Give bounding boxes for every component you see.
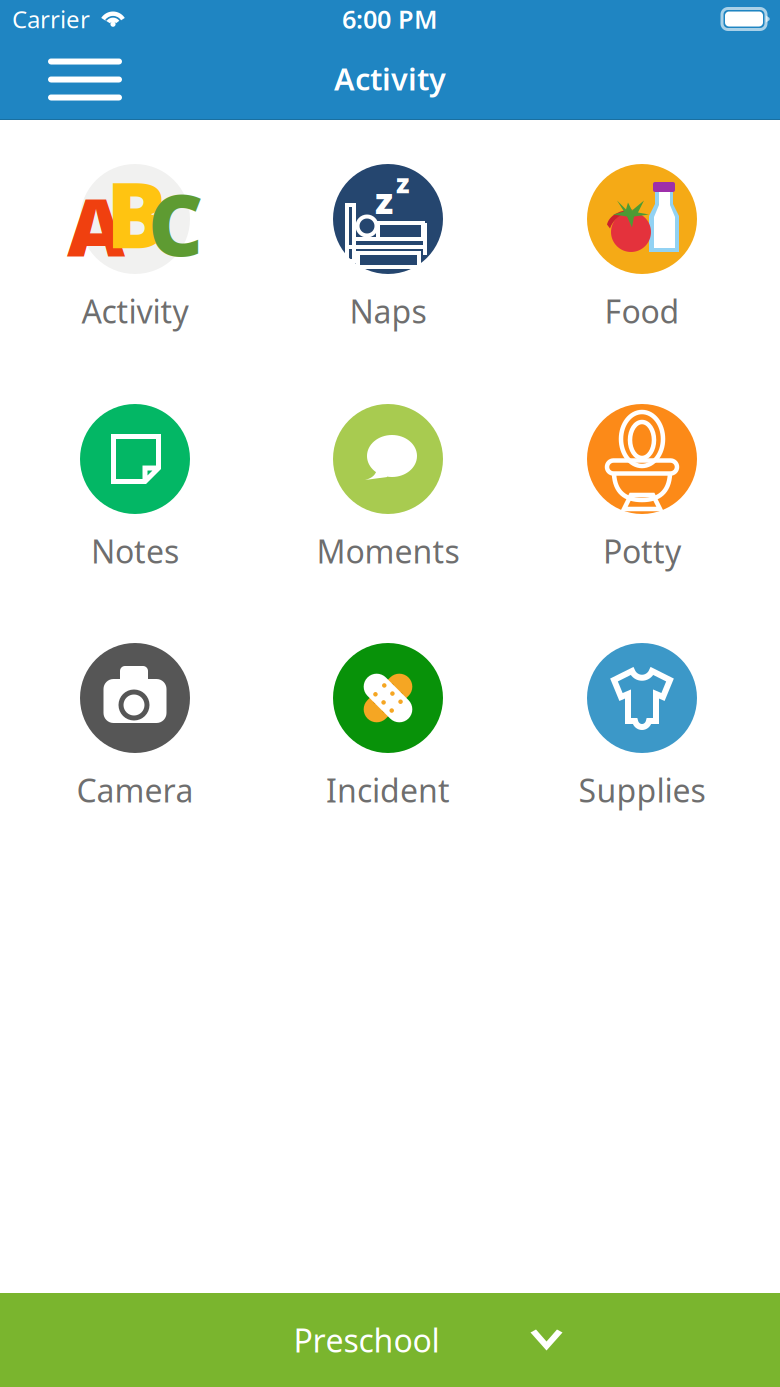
staticText: Potty <box>603 530 681 572</box>
staticText: A <box>67 173 125 279</box>
button[interactable]: Menu <box>33 42 137 117</box>
button[interactable]: Incident <box>268 643 508 810</box>
button[interactable]: Preschool <box>0 1293 780 1387</box>
button[interactable]: A <box>15 164 255 331</box>
staticText: Food <box>604 290 679 332</box>
staticText: Notes <box>91 530 179 572</box>
button[interactable]: Camera <box>15 643 255 810</box>
staticText: Incident <box>326 769 450 811</box>
button[interactable]: Moments <box>268 404 508 571</box>
staticText: Preschool <box>293 1319 439 1361</box>
staticText: B <box>106 153 167 273</box>
staticText: z <box>375 176 393 224</box>
staticText: C <box>148 166 203 280</box>
staticText: Activity <box>81 290 188 332</box>
button[interactable]: Supplies <box>522 643 762 810</box>
staticText: z <box>396 165 410 201</box>
button[interactable]: Potty <box>522 404 762 571</box>
button[interactable]: z <box>268 164 508 331</box>
staticText: Camera <box>76 769 193 811</box>
staticText: Moments <box>316 530 459 572</box>
staticText: Naps <box>349 290 426 332</box>
staticText: Activity <box>334 58 446 99</box>
button[interactable]: Notes <box>15 404 255 571</box>
staticText: Carrier <box>12 3 90 35</box>
button[interactable]: Food <box>522 164 762 331</box>
staticText: Supplies <box>578 769 705 811</box>
staticText: 6:00 PM <box>342 2 438 36</box>
